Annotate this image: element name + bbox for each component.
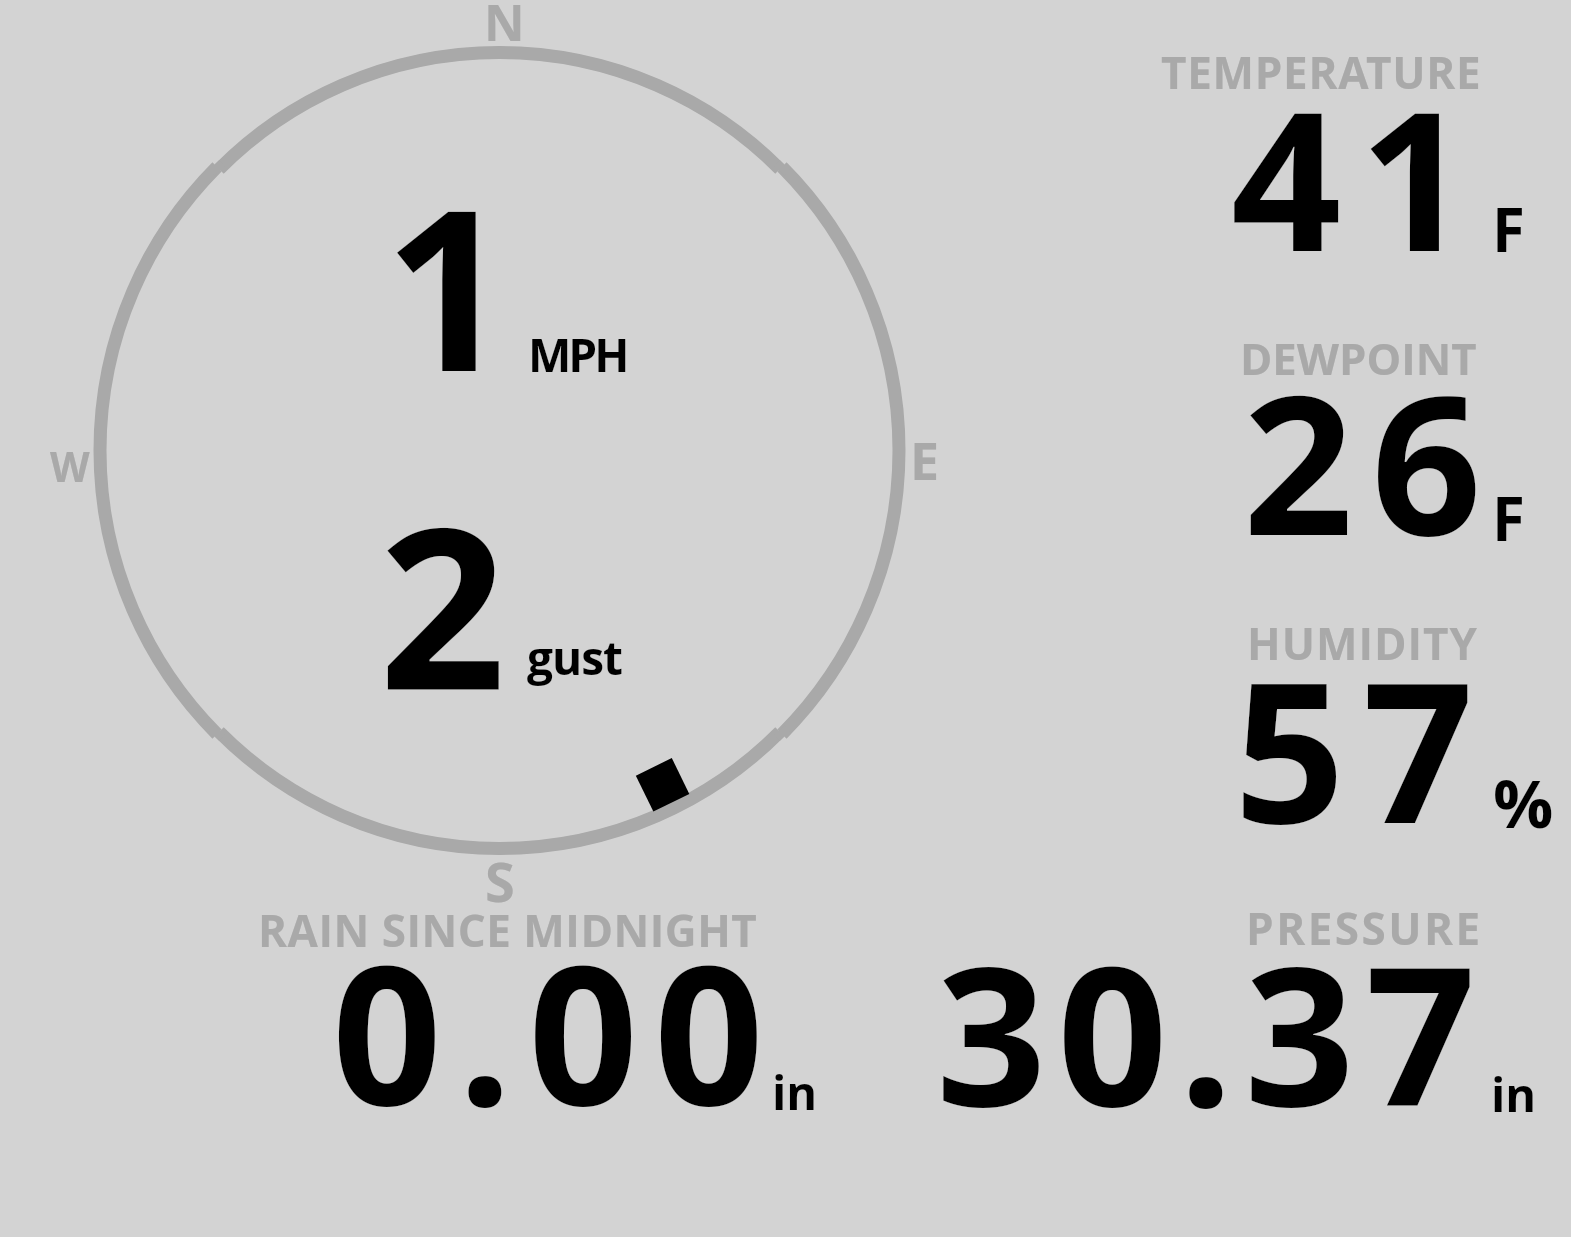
staticText: F bbox=[1492, 477, 1525, 559]
button[interactable]: Humidity 57 percent bbox=[1140, 612, 1540, 837]
button[interactable]: Temperature 41 degrees Fahrenheit bbox=[1140, 40, 1540, 265]
staticText: 2 bbox=[379, 452, 506, 754]
staticText: F bbox=[1492, 188, 1525, 270]
staticText: DEWPOINT bbox=[1240, 328, 1477, 388]
staticText: % bbox=[1493, 756, 1554, 847]
staticText: E bbox=[910, 424, 940, 495]
staticText: in bbox=[772, 1060, 818, 1124]
staticText: 0.00 bbox=[332, 900, 780, 1161]
staticText: 30.37 bbox=[936, 900, 1487, 1163]
button[interactable]: Pressure 30.37 inches bbox=[920, 898, 1540, 1123]
staticText: 41 bbox=[1231, 45, 1488, 308]
staticText: S bbox=[485, 844, 515, 918]
staticText: N bbox=[484, 0, 525, 56]
staticText: gust bbox=[527, 626, 623, 689]
staticText: RAIN SINCE MIDNIGHT bbox=[258, 900, 758, 960]
staticText: HUMIDITY bbox=[1247, 613, 1479, 673]
button[interactable]: Dewpoint 26 degrees Fahrenheit bbox=[1140, 326, 1540, 551]
staticText: PRESSURE bbox=[1246, 898, 1483, 958]
staticText: 26 bbox=[1243, 329, 1500, 592]
button[interactable]: Wind: 1 miles per hour, gusting 2, from … bbox=[96, 48, 904, 856]
staticText: W bbox=[50, 438, 90, 494]
staticText: 57 bbox=[1234, 616, 1492, 880]
staticText: in bbox=[1491, 1062, 1537, 1126]
staticText: TEMPERATURE bbox=[1161, 42, 1482, 102]
button[interactable]: Rain since midnight 0.00 inches bbox=[240, 898, 840, 1123]
staticText: 1 bbox=[384, 134, 511, 436]
staticText: MPH bbox=[528, 323, 627, 386]
